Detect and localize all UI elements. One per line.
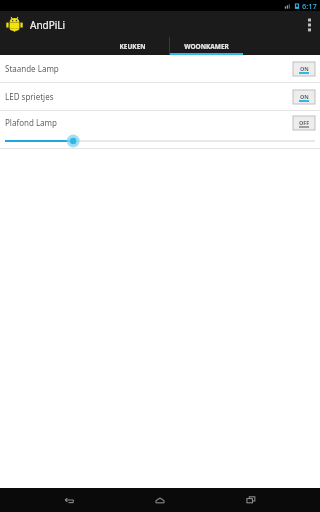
- staticText: KEUKEN: [119, 42, 146, 51]
- button[interactable]: Turn on: [293, 116, 315, 130]
- staticText: Plafond Lamp: [5, 117, 293, 128]
- staticText: OFF: [299, 119, 310, 126]
- button[interactable]: WOONKAMER: [170, 37, 243, 55]
- staticText: WOONKAMER: [184, 42, 229, 51]
- button[interactable]: Turn off: [293, 62, 315, 76]
- button[interactable]: Turn off: [293, 90, 315, 104]
- button[interactable]: KEUKEN: [96, 37, 169, 55]
- button[interactable]: Plafond Lamp: [0, 111, 320, 148]
- staticText: LED sprietjes: [5, 91, 293, 102]
- staticText: ON: [300, 93, 309, 100]
- staticText: ON: [300, 65, 309, 72]
- staticText: Staande Lamp: [5, 63, 293, 74]
- button[interactable]: Back: [47, 488, 91, 512]
- staticText: AndPiLi: [30, 18, 66, 32]
- button[interactable]: More options: [298, 11, 320, 37]
- button[interactable]: LED sprietjes: [0, 83, 320, 110]
- button[interactable]: Home: [138, 488, 182, 512]
- button[interactable]: Staande Lamp: [0, 55, 320, 82]
- button[interactable]: Brightness slider: [5, 134, 315, 148]
- button[interactable]: Recent apps: [229, 488, 273, 512]
- staticText: 6:17: [302, 1, 317, 11]
